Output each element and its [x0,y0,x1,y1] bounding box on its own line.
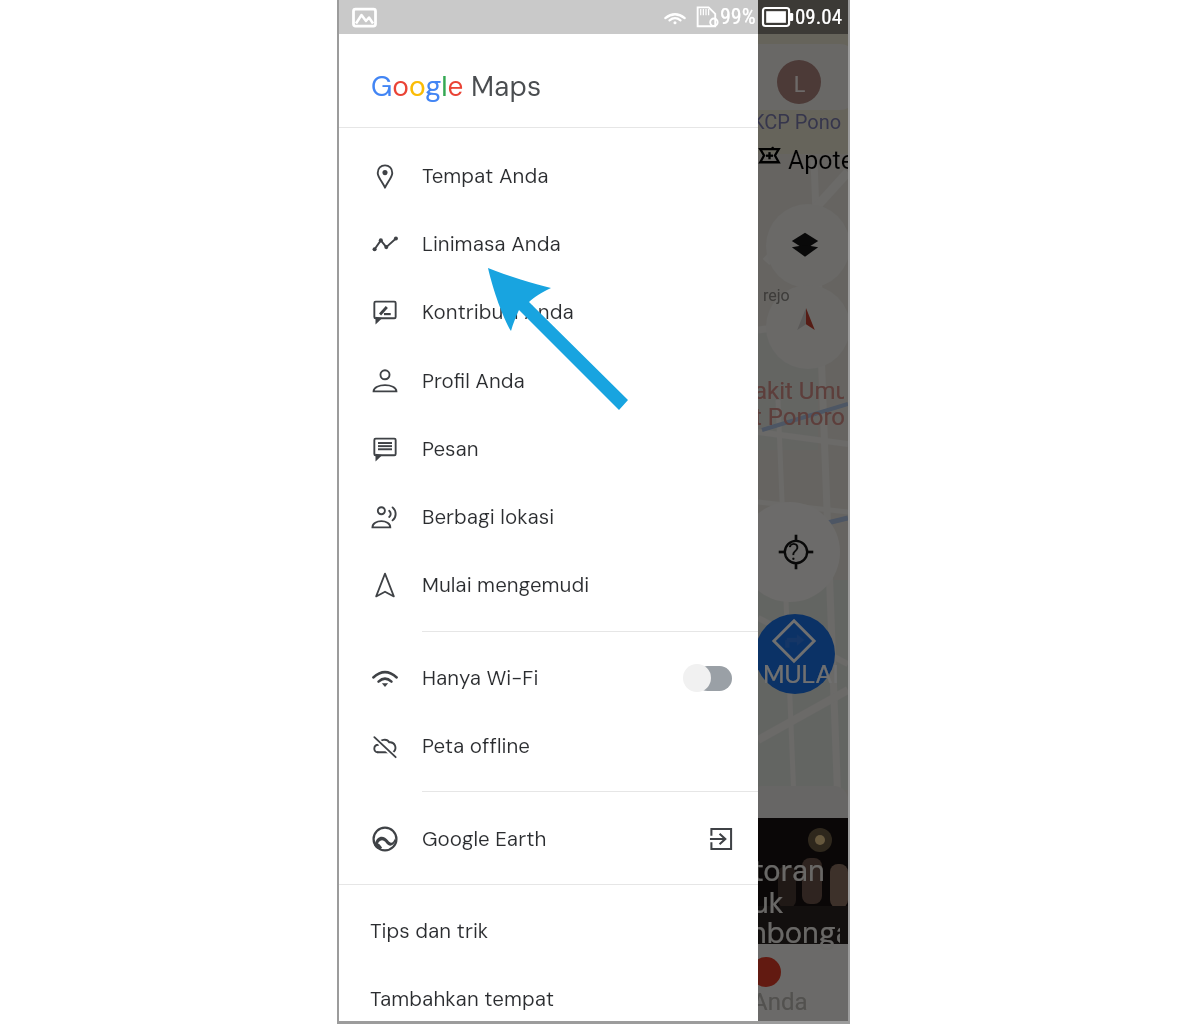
button[interactable]: Hanya Wi-Fi [338,644,758,712]
button[interactable]: Berbagi lokasi [338,483,758,551]
staticText: rejo [763,286,790,305]
staticText: Pesan [422,436,479,463]
staticText: 99% [720,4,756,30]
button[interactable]: Peta offline [338,712,758,780]
staticText: KCP Ponoro [758,110,842,133]
button[interactable]: Google Earth [338,805,758,873]
staticText: L [794,70,806,99]
staticText: Apotek [788,146,848,175]
staticText: uk [758,884,784,922]
staticText: Tambahkan tempat [370,986,555,1013]
button[interactable]: Kontribusi Anda [338,278,758,346]
staticText: Peta offline [422,733,530,760]
staticText: Kontribusi Anda [422,299,574,326]
button[interactable]: Tempat Anda [338,142,758,210]
button[interactable]: Profil Anda [338,347,758,415]
button[interactable]: Hanya Wi-Fi [683,664,733,692]
button[interactable]: Tambahkan tempat [338,965,758,1024]
staticText: Google Earth [422,826,547,853]
button[interactable]: Linimasa Anda [338,210,758,278]
staticText: 09.04 [795,5,843,30]
staticText: Mulai mengemudi [422,572,590,599]
staticText: Tips dan trik [370,918,489,945]
button[interactable]: Pesan [338,415,758,483]
staticText: Profil Anda [422,368,525,395]
staticText: toran [758,852,825,890]
staticText: nbongan [758,914,840,952]
staticText: Berbagi lokasi [422,504,555,531]
staticText: MULAI [763,657,839,691]
button[interactable]: Mulai mengemudi [338,551,758,619]
staticText: ? [788,538,800,566]
staticText: Tempat Anda [422,163,549,190]
staticText: Hanya Wi-Fi [422,665,539,692]
staticText: Linimasa Anda [422,231,561,258]
button[interactable]: Open Google Earth [709,827,733,851]
button[interactable]: Tips dan trik [338,897,758,965]
staticText: akit Umum [758,377,844,405]
staticText: Anda [758,988,808,1016]
staticText: Google Maps [371,68,542,104]
staticText: t Ponorogo [758,403,844,431]
